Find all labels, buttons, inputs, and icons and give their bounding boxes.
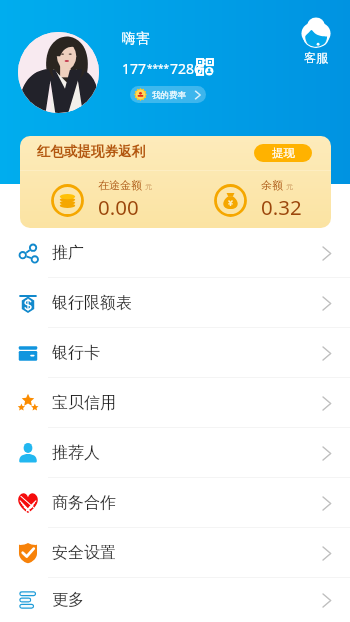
staticText: 商务合作 (52, 493, 116, 513)
button[interactable]: Profile photo (18, 32, 99, 113)
staticText: 安全设置 (52, 543, 116, 563)
staticText: 提现 (272, 146, 295, 160)
staticText: 更多 (52, 590, 84, 610)
button[interactable]: 提现 (254, 144, 312, 162)
staticText: 宝贝信用 (52, 393, 116, 413)
staticText: 0.32 (261, 193, 302, 221)
staticText: 元 (286, 182, 293, 191)
staticText: 推荐人 (52, 443, 100, 463)
staticText: **** (147, 61, 170, 75)
staticText: 嗨害 (122, 30, 150, 48)
button[interactable]: 更多 (0, 578, 350, 622)
staticText: 推广 (52, 243, 84, 263)
staticText: 客服 (304, 50, 328, 65)
button[interactable]: 推荐人 (0, 428, 350, 478)
button[interactable]: 在途金额 (51, 179, 152, 222)
button[interactable]: 推广 (0, 228, 350, 278)
staticText: 元 (145, 182, 152, 191)
staticText: 银行限额表 (52, 293, 132, 313)
staticText: 177 (122, 59, 147, 78)
staticText: 余额 (261, 178, 283, 192)
button[interactable]: 安全设置 (0, 528, 350, 578)
button[interactable]: 商务合作 (0, 478, 350, 528)
button[interactable]: 银行卡 (0, 328, 350, 378)
staticText: 7286 (170, 59, 203, 78)
button[interactable]: 我的费率 (130, 86, 206, 103)
staticText: 红包或提现券返利 (37, 143, 145, 160)
button[interactable]: Scan QR code (197, 59, 214, 76)
button[interactable]: 宝贝信用 (0, 378, 350, 428)
button[interactable]: 银行限额表 (0, 278, 350, 328)
staticText: 在途金额 (98, 178, 142, 192)
staticText: 0.00 (98, 193, 139, 221)
button[interactable]: Customer service (295, 18, 336, 65)
staticText: 我的费率 (152, 90, 186, 101)
button[interactable]: 余额 (214, 179, 302, 222)
staticText: 银行卡 (52, 343, 100, 363)
